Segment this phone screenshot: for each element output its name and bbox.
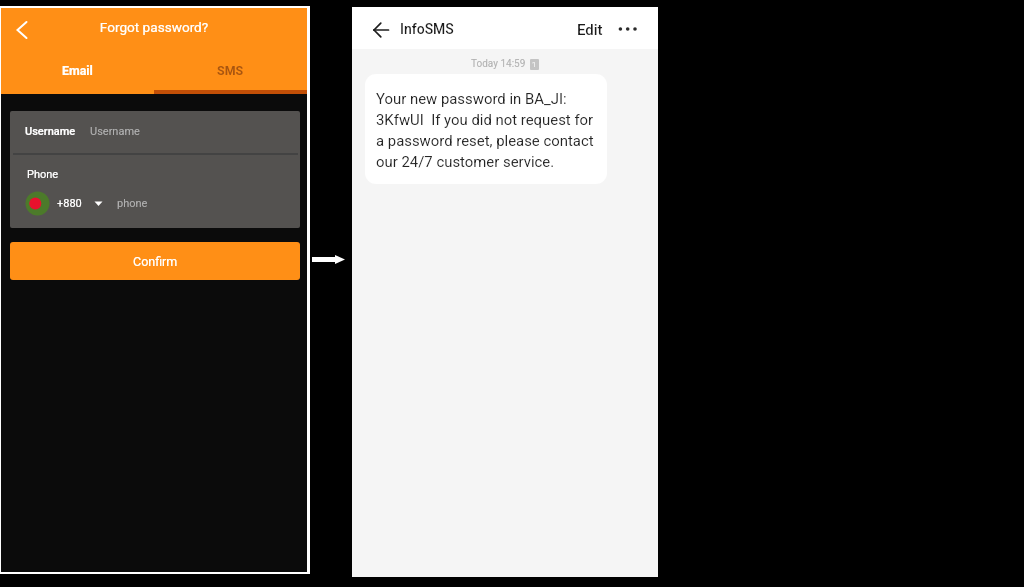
staticText: Email [62, 63, 93, 78]
staticText: SMS [217, 63, 244, 78]
button[interactable]: Email [1, 63, 154, 89]
button[interactable]: Select country [25, 191, 50, 215]
button[interactable]: Your new password in BA_JI: 3KfwUI If yo… [365, 74, 607, 184]
staticText: phone [117, 197, 148, 210]
staticText: Today 14:59 [471, 58, 526, 70]
button[interactable]: Back [370, 18, 394, 42]
button[interactable]: SMS [154, 63, 307, 89]
staticText: Edit [577, 21, 603, 39]
staticText: 1 [532, 60, 537, 69]
staticText: Username [90, 125, 140, 138]
staticText: Phone [27, 168, 59, 181]
staticText: Forgot password? [1, 19, 307, 35]
staticText: Username [25, 125, 76, 138]
staticText: +880 [57, 197, 82, 210]
staticText: Your new password in BA_JI: 3KfwUI If yo… [376, 90, 600, 170]
staticText: InfoSMS [400, 21, 454, 37]
button[interactable]: Back [6, 16, 34, 44]
staticText: Confirm [133, 254, 178, 269]
button[interactable]: More options [614, 18, 642, 44]
button[interactable]: Confirm [10, 242, 300, 280]
button[interactable]: Edit [570, 18, 606, 44]
